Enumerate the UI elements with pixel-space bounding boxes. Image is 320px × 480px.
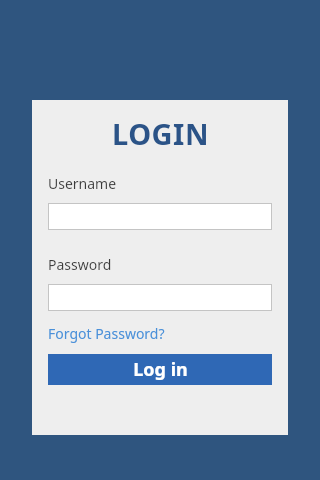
staticText: Forgot Password? [48,324,165,343]
button[interactable] [48,203,272,230]
staticText: LOGIN [112,114,209,153]
staticText: Password [48,255,112,274]
button[interactable] [48,284,272,311]
button[interactable]: Forgot Password? [48,324,165,343]
button[interactable]: Log in [48,354,272,385]
staticText: Log in [133,357,188,382]
staticText: Username [48,174,117,193]
